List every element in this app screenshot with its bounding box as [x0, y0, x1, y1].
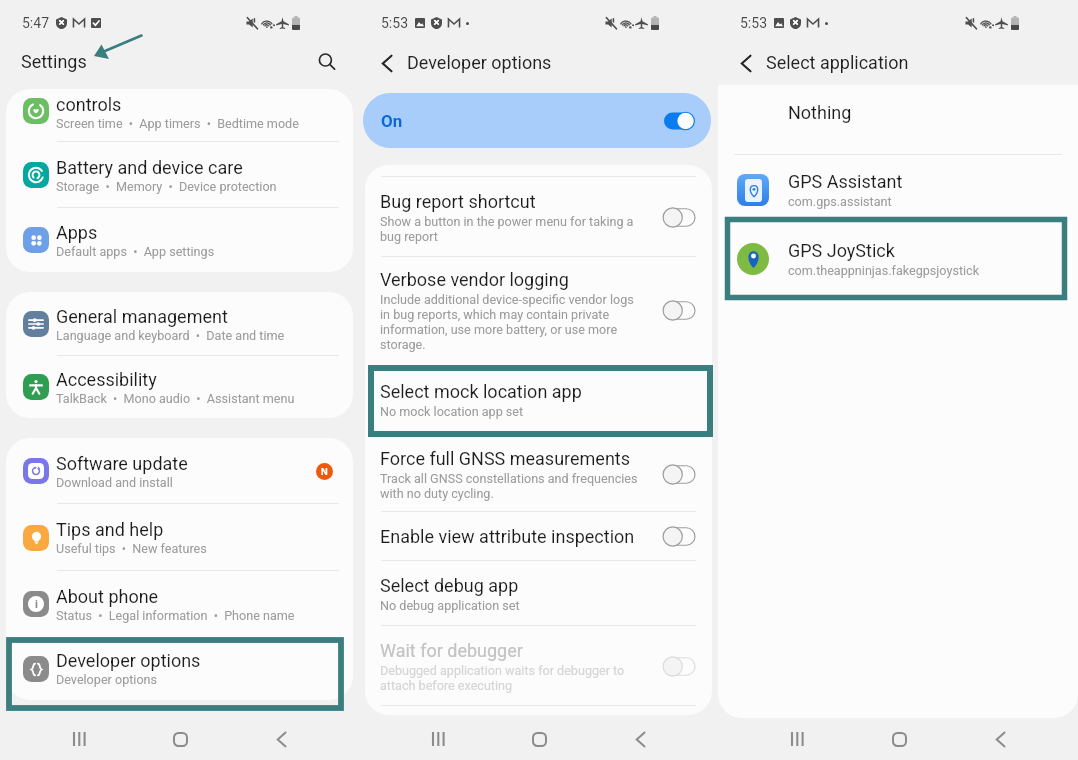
button[interactable]: Developer options	[6, 637, 353, 700]
staticText: About phone	[56, 586, 159, 607]
staticText: TalkBack • Mono audio • Assistant menu	[56, 391, 295, 406]
button[interactable]: Tips and help	[6, 504, 353, 571]
staticText: GPS JoyStick	[788, 240, 895, 261]
button[interactable]: Toggle	[662, 526, 696, 547]
button[interactable]: Navigate up	[373, 49, 401, 77]
staticText: Show a button in the power menu for taki…	[380, 214, 634, 244]
button[interactable]: Home	[158, 718, 202, 760]
button[interactable]: GPS Assistant	[718, 155, 1078, 222]
staticText: On	[381, 111, 403, 131]
button[interactable]: Enable view attribute inspection	[365, 512, 712, 561]
button[interactable]: Home	[877, 718, 921, 760]
button[interactable]: Recents	[57, 718, 101, 760]
staticText: Status • Legal information • Phone name	[56, 608, 295, 623]
button[interactable]: Software update	[6, 438, 353, 504]
staticText: Verbose vendor logging	[380, 269, 569, 290]
button[interactable]: Back	[978, 718, 1022, 760]
button[interactable]: Home	[517, 718, 561, 760]
staticText: Enable view attribute inspection	[380, 526, 635, 547]
staticText: N	[321, 466, 328, 477]
staticText: Default apps • App settings	[56, 244, 215, 259]
button[interactable]: Toggle	[662, 300, 696, 321]
staticText: General management	[56, 306, 228, 327]
button[interactable]: Battery and device care	[6, 142, 353, 208]
button[interactable]: Navigate up	[732, 49, 760, 77]
staticText: 5:53	[381, 15, 408, 31]
button[interactable]: Search	[309, 44, 345, 80]
staticText: Bug report shortcut	[380, 191, 536, 212]
button[interactable]: Recents	[775, 718, 819, 760]
button[interactable]: Verbose vendor logging	[365, 257, 712, 364]
staticText: Tips and help	[56, 519, 164, 540]
staticText: Nothing	[788, 102, 852, 123]
staticText: Track all GNSS constellations and freque…	[380, 471, 638, 501]
staticText: Apps	[56, 222, 98, 243]
staticText: GPS Assistant	[788, 171, 903, 192]
staticText: i	[35, 598, 38, 611]
staticText: com.gps.assistant	[788, 194, 892, 209]
staticText: No debug application set	[380, 598, 520, 613]
staticText: com.theappninjas.fakegpsjoystick	[788, 263, 980, 278]
button[interactable]: Toggle	[662, 656, 696, 677]
staticText: Screen time • App timers • Bedtime mode	[56, 116, 299, 131]
staticText: Developer options	[56, 672, 158, 687]
button[interactable]: Back	[259, 718, 303, 760]
staticText: Settings	[21, 51, 87, 72]
staticText: Language and keyboard • Date and time	[56, 328, 285, 343]
staticText: Select application	[766, 52, 909, 73]
button[interactable]: i	[6, 571, 353, 637]
staticText: Include additional device-specific vendo…	[380, 292, 634, 352]
button[interactable]: Apps	[6, 208, 353, 272]
staticText: 5:47	[22, 15, 49, 31]
staticText: Debugged application waits for debugger …	[380, 663, 625, 693]
button[interactable]: Bug report shortcut	[365, 177, 712, 257]
staticText: Useful tips • New features	[56, 541, 207, 556]
button[interactable]: Nothing	[718, 85, 1078, 154]
button[interactable]: Toggle	[662, 207, 696, 228]
staticText: Accessibility	[56, 369, 157, 390]
button[interactable]: Toggle	[662, 464, 696, 485]
button[interactable]: Select debug app	[365, 561, 712, 626]
button[interactable]: Back	[618, 718, 662, 760]
button[interactable]: General management	[6, 292, 353, 356]
staticText: 5:53	[740, 15, 767, 31]
staticText: Developer options	[407, 52, 552, 73]
staticText: Wait for debugger	[380, 640, 523, 661]
staticText: No mock location app set	[380, 404, 524, 419]
button[interactable]: GPS JoyStick	[718, 222, 1078, 300]
staticText: controls	[56, 94, 122, 115]
button[interactable]: controls	[6, 89, 353, 142]
staticText: Software update	[56, 453, 188, 474]
staticText: Developer options	[56, 650, 201, 671]
staticText: Select debug app	[380, 575, 519, 596]
button[interactable]: Developer options toggle	[664, 111, 697, 131]
button[interactable]: On	[363, 93, 711, 148]
button[interactable]: Recents	[416, 718, 460, 760]
staticText: Download and install	[56, 475, 173, 490]
button[interactable]: Force full GNSS measurements	[365, 436, 712, 512]
button[interactable]: Accessibility	[6, 356, 353, 418]
staticText: Force full GNSS measurements	[380, 448, 630, 469]
button[interactable]: Wait for debugger	[365, 626, 712, 706]
staticText: Select mock location app	[380, 381, 582, 402]
staticText: Battery and device care	[56, 157, 243, 178]
button[interactable]: Select mock location app	[365, 364, 712, 436]
staticText: Storage • Memory • Device protection	[56, 179, 277, 194]
